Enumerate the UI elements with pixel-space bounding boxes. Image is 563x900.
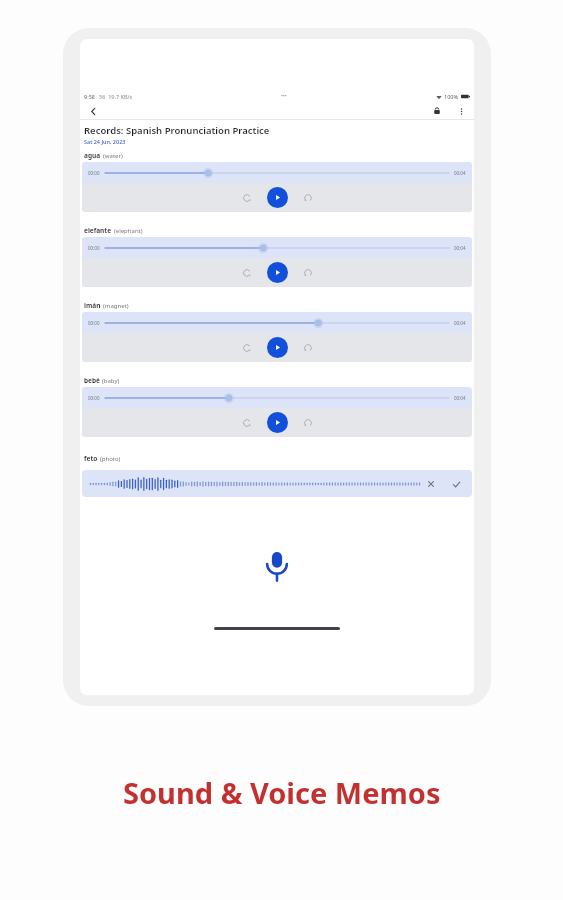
staticText: 00:04 <box>454 320 466 326</box>
staticText: (elephant) <box>114 227 143 235</box>
staticText: 00:00 <box>88 320 100 326</box>
staticText: (photo) <box>100 455 121 463</box>
button[interactable]: 00:00 <box>82 387 472 437</box>
button[interactable]: 00:00 <box>82 237 472 287</box>
staticText: 9:58 <box>84 93 95 100</box>
staticText: 00:00 <box>88 395 100 401</box>
button[interactable]: Forward 5 seconds <box>299 414 317 432</box>
staticText: 00:04 <box>454 395 466 401</box>
button[interactable]: 00:00 <box>82 162 472 212</box>
staticText: Sound & Voice Memos <box>123 773 441 812</box>
button[interactable]: Replay 5 seconds <box>238 414 256 432</box>
button[interactable]: Play <box>267 412 288 433</box>
button[interactable]: Forward 5 seconds <box>299 189 317 207</box>
button[interactable]: Discard recording <box>421 474 441 494</box>
staticText: feto <box>84 454 98 463</box>
button[interactable]: Back <box>85 103 101 119</box>
button[interactable]: 00:00 <box>82 312 472 362</box>
staticText: 56 19.7 KB/s <box>99 93 133 100</box>
staticText: (water) <box>103 152 123 160</box>
button[interactable]: Record <box>240 529 314 603</box>
staticText: 100% <box>444 93 459 100</box>
staticText: agua <box>84 151 101 160</box>
button[interactable]: Replay 5 seconds <box>238 264 256 282</box>
staticText: Records: Spanish Pronunciation Practice <box>84 124 270 137</box>
button[interactable]: Lock <box>429 103 445 119</box>
button[interactable]: Play <box>267 337 288 358</box>
button[interactable]: Play <box>267 262 288 283</box>
staticText: 00:00 <box>88 170 100 176</box>
staticText: imán <box>84 301 101 310</box>
staticText: bebé <box>84 376 100 385</box>
staticText: 00:00 <box>88 245 100 251</box>
button[interactable]: Replay 5 seconds <box>238 339 256 357</box>
staticText: 00:04 <box>454 245 466 251</box>
button[interactable]: Replay 5 seconds <box>238 189 256 207</box>
staticText: 00:04 <box>454 170 466 176</box>
button[interactable]: Forward 5 seconds <box>299 339 317 357</box>
button[interactable]: Save recording <box>446 474 466 494</box>
staticText: elefante <box>84 226 112 235</box>
button[interactable]: Forward 5 seconds <box>299 264 317 282</box>
staticText: Sat 24 Jun, 2023 <box>84 138 126 145</box>
button[interactable]: Discard recording <box>82 470 472 497</box>
staticText: ••• <box>281 93 287 100</box>
staticText: (baby) <box>102 377 120 385</box>
staticText: (magnet) <box>103 302 129 310</box>
button[interactable]: More options <box>453 103 469 119</box>
button[interactable]: Play <box>267 187 288 208</box>
